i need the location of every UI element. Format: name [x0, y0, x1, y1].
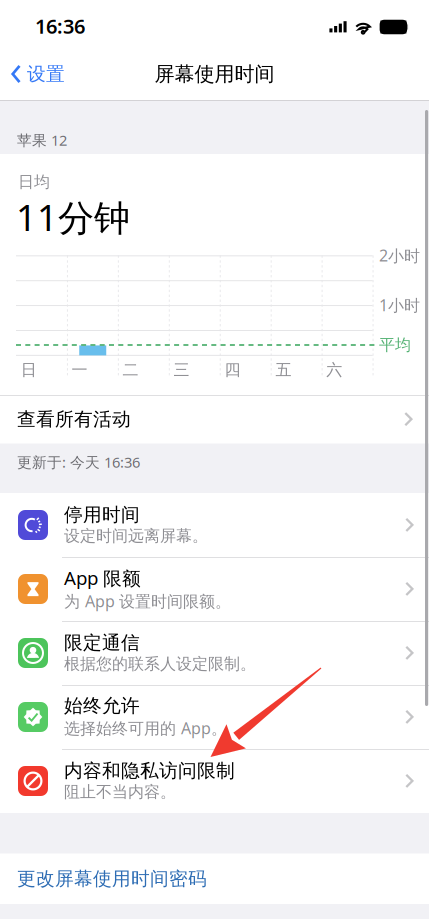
staticText: 2小时 — [379, 245, 420, 266]
staticText: 五 — [275, 360, 291, 380]
staticText: 1小时 — [379, 294, 420, 316]
staticText: 更新于: 今天 16:36 — [17, 452, 140, 472]
staticText: 苹果 12 — [17, 130, 67, 150]
staticText: 始终允许 — [64, 694, 140, 717]
staticText: 内容和隐私访问限制 — [64, 759, 235, 782]
button[interactable]: 查看所有活动 — [0, 0, 429, 919]
staticText: 一 — [72, 360, 88, 380]
staticText: 平均 — [379, 335, 411, 355]
button[interactable]: 设置 — [0, 0, 429, 919]
staticText: 根据您的联系人设定限制。 — [64, 654, 256, 674]
staticText: 六 — [326, 360, 342, 380]
staticText: 选择始终可用的 App。 — [64, 717, 227, 738]
button[interactable]: 更改屏幕使用时间密码 — [0, 0, 429, 919]
staticText: App 限额 — [64, 565, 141, 590]
staticText: 16:36 — [35, 13, 85, 39]
staticText: 三 — [173, 360, 189, 380]
button[interactable]: App 限额 — [0, 0, 429, 919]
staticText: 设定时间远离屏幕。 — [64, 526, 208, 546]
button[interactable]: 停用时间 — [0, 0, 429, 919]
staticText: 查看所有活动 — [17, 408, 131, 431]
staticText: 四 — [224, 360, 240, 380]
staticText: 停用时间 — [64, 503, 140, 526]
staticText: 屏幕使用时间 — [154, 62, 274, 86]
button[interactable]: 始终允许 — [0, 0, 429, 919]
staticText: 阻止不当内容。 — [64, 782, 176, 802]
button[interactable]: 内容和隐私访问限制 — [0, 0, 429, 919]
staticText: 更改屏幕使用时间密码 — [17, 867, 207, 890]
staticText: 限定通信 — [64, 631, 140, 654]
staticText: 日均 — [18, 172, 50, 192]
staticText: 为 App 设置时间限额。 — [64, 590, 231, 611]
staticText: 11分钟 — [16, 193, 130, 241]
button[interactable]: 限定通信 — [0, 0, 429, 919]
staticText: 设置 — [27, 62, 65, 85]
staticText: 二 — [123, 360, 139, 380]
staticText: 日 — [21, 360, 37, 380]
